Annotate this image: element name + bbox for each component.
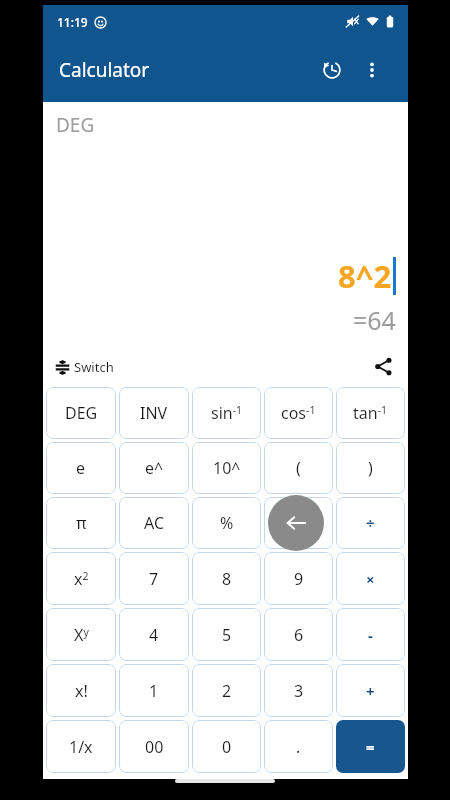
button[interactable]: Share — [368, 351, 398, 381]
staticText: sin-1 — [211, 402, 243, 424]
button[interactable]: History — [312, 50, 352, 90]
staticText: DEG — [65, 402, 98, 424]
staticText: e^ — [145, 457, 164, 479]
button[interactable]: ) — [336, 442, 405, 494]
button[interactable]: 1 — [119, 664, 189, 717]
button[interactable]: AC — [119, 497, 189, 549]
button[interactable]: 6 — [264, 608, 333, 661]
staticText: - — [368, 625, 373, 645]
staticText: x2 — [74, 568, 89, 590]
staticText: ÷ — [366, 513, 375, 533]
staticText: 0 — [222, 736, 232, 758]
button[interactable]: 0 — [192, 720, 261, 773]
staticText: + — [366, 681, 375, 701]
staticText: × — [366, 569, 375, 589]
button[interactable]: x2 — [46, 552, 116, 605]
staticText: 1/x — [69, 736, 93, 758]
button[interactable]: = — [336, 720, 405, 773]
button[interactable]: e — [46, 442, 116, 494]
button[interactable]: DEG — [46, 387, 116, 439]
staticText: 6 — [294, 624, 304, 646]
staticText: 7 — [149, 568, 159, 590]
staticText: 8 — [222, 568, 232, 590]
button[interactable]: 9 — [264, 552, 333, 605]
button[interactable]: 7 — [119, 552, 189, 605]
staticText: . — [296, 736, 301, 758]
button[interactable]: % — [192, 497, 261, 549]
button[interactable]: cos-1 — [264, 387, 333, 439]
button[interactable]: e^ — [119, 442, 189, 494]
staticText: Calculator — [59, 57, 150, 83]
button[interactable]: 4 — [119, 608, 189, 661]
staticText: = — [366, 737, 375, 757]
button[interactable]: Backspace — [268, 495, 324, 551]
staticText: % — [220, 512, 234, 534]
staticText: =64 — [353, 303, 396, 337]
button[interactable]: π — [46, 497, 116, 549]
button[interactable]: + — [336, 664, 405, 717]
staticText: 2 — [222, 680, 232, 702]
button[interactable]: 2 — [192, 664, 261, 717]
staticText: 11:19 — [57, 14, 88, 30]
button[interactable]: Xy — [46, 608, 116, 661]
button[interactable]: sin-1 — [192, 387, 261, 439]
staticText: ) — [368, 457, 373, 479]
button[interactable]: ( — [264, 442, 333, 494]
staticText: 3 — [294, 680, 304, 702]
staticText: cos-1 — [281, 402, 316, 424]
staticText: ( — [296, 457, 301, 479]
staticText: π — [76, 512, 87, 534]
button[interactable]: Switch — [53, 356, 116, 378]
button[interactable]: x! — [46, 664, 116, 717]
button[interactable]: INV — [119, 387, 189, 439]
staticText: x! — [75, 680, 88, 702]
staticText: tan-1 — [353, 402, 388, 424]
staticText: 1 — [149, 680, 159, 702]
staticText: 4 — [149, 624, 159, 646]
button[interactable]: 1/x — [46, 720, 116, 773]
staticText: INV — [140, 402, 168, 424]
button[interactable]: 3 — [264, 664, 333, 717]
button[interactable]: 5 — [192, 608, 261, 661]
staticText: 10^ — [213, 457, 241, 479]
button[interactable]: ÷ — [336, 497, 405, 549]
button[interactable]: × — [336, 552, 405, 605]
button[interactable]: 00 — [119, 720, 189, 773]
button[interactable]: - — [336, 608, 405, 661]
button[interactable]: More options — [352, 50, 392, 90]
staticText: AC — [144, 512, 165, 534]
staticText: e — [76, 457, 86, 479]
button[interactable]: 10^ — [192, 442, 261, 494]
staticText: 5 — [222, 624, 232, 646]
staticText: 9 — [294, 568, 304, 590]
staticText: 00 — [145, 736, 164, 758]
button[interactable]: 8 — [192, 552, 261, 605]
button[interactable]: Backspace — [264, 497, 333, 549]
staticText: 8^2 — [338, 255, 392, 297]
staticText: DEG — [56, 112, 95, 138]
staticText: Switch — [74, 358, 114, 376]
staticText: Xy — [74, 624, 89, 646]
button[interactable]: tan-1 — [336, 387, 405, 439]
button[interactable]: . — [264, 720, 333, 773]
